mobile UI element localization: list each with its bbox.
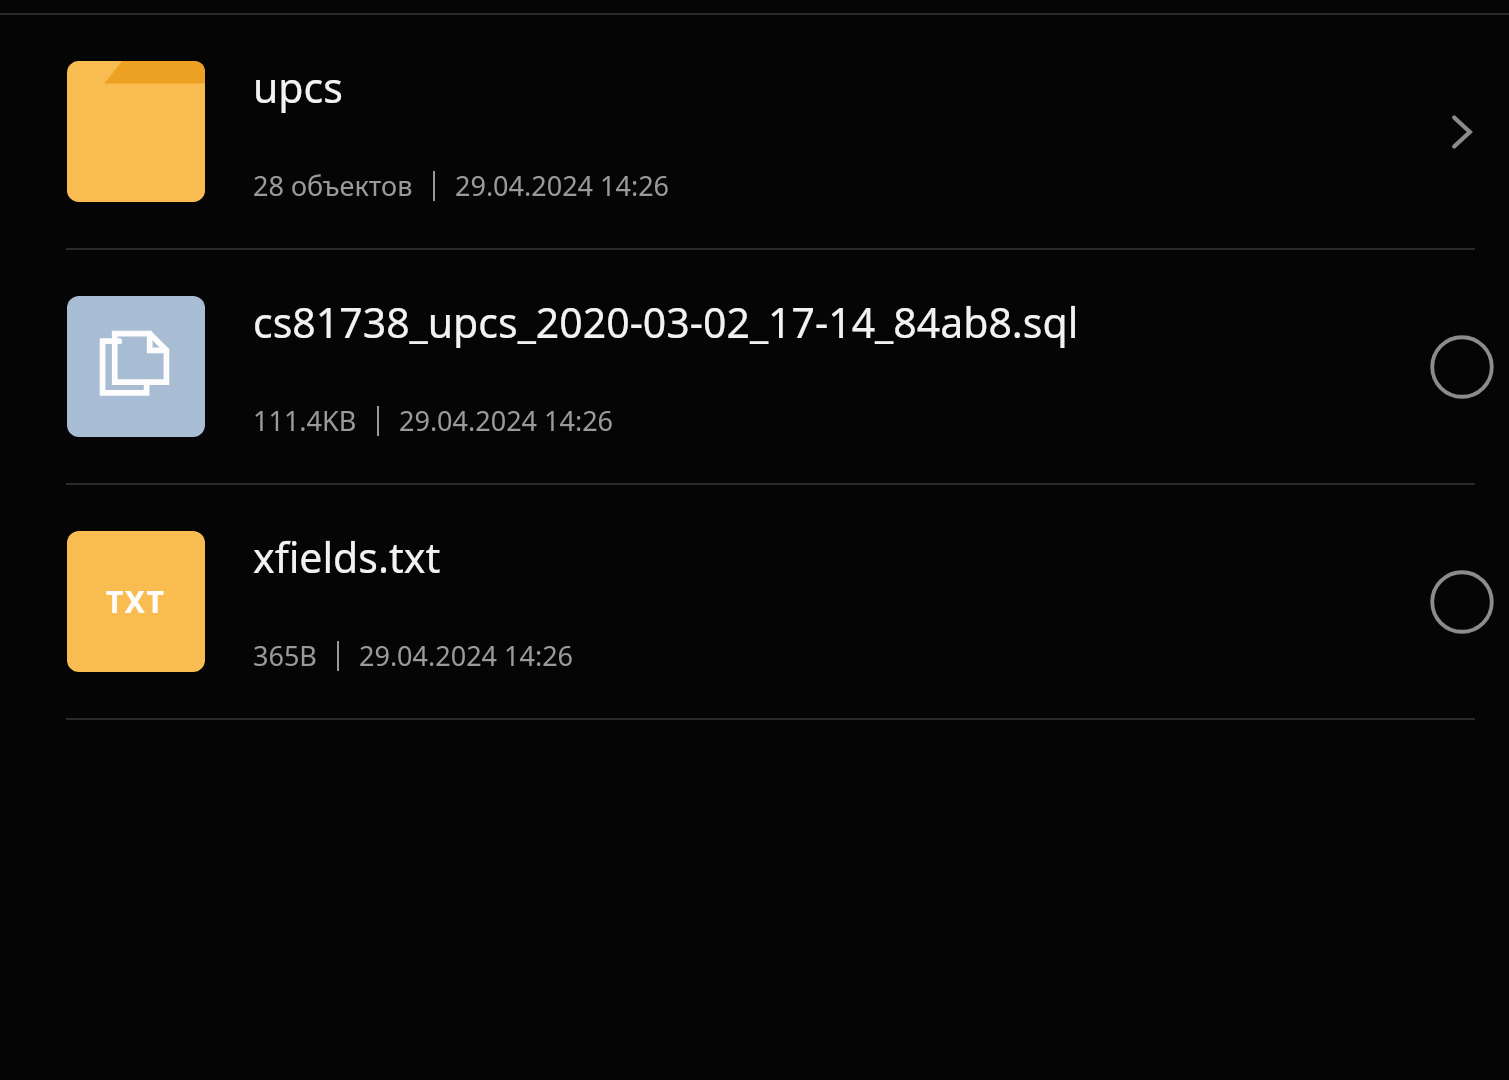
staticText: cs81738_upcs_2020-03-02_17-14_84ab8.sql [253, 294, 1079, 350]
staticText: upcs [253, 59, 343, 115]
button[interactable]: cs81738_upcs_2020-03-02_17-14_84ab8.sql [0, 250, 1509, 483]
button[interactable]: Select item [1415, 320, 1509, 414]
staticText: 28 объектов [253, 167, 413, 204]
staticText: 29.04.2024 14:26 [455, 167, 670, 204]
button[interactable]: Select item [1415, 555, 1509, 649]
staticText: 111.4KB [253, 402, 357, 439]
staticText: 29.04.2024 14:26 [359, 637, 574, 674]
button[interactable]: Open folder [1415, 85, 1509, 179]
staticText: 365B [253, 637, 317, 674]
button[interactable]: upcs [0, 15, 1509, 248]
staticText: xfields.txt [253, 529, 441, 585]
button[interactable]: TXT [0, 485, 1509, 718]
staticText: TXT [106, 581, 166, 622]
staticText: 29.04.2024 14:26 [399, 402, 614, 439]
